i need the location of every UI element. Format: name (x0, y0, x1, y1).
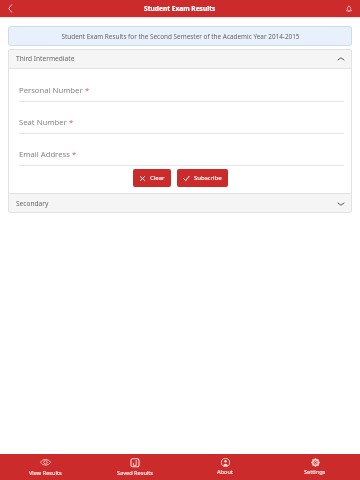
button[interactable]: About (180, 454, 270, 480)
button[interactable]: Subscribe (177, 169, 228, 187)
button[interactable]: Notifications (338, 0, 360, 17)
staticText: Clear (150, 174, 165, 182)
staticText: Secondary (16, 199, 49, 208)
staticText: Personal Number (19, 85, 83, 95)
staticText: Email Address (19, 149, 70, 159)
button[interactable]: Secondary (8, 194, 352, 213)
staticText: Saved Results (117, 469, 154, 477)
staticText: Subscribe (194, 174, 222, 182)
staticText: * (83, 85, 90, 95)
staticText: Student Exam Results for the Second Seme… (61, 32, 300, 41)
button[interactable]: View Results (0, 454, 90, 480)
staticText: * (70, 149, 77, 159)
staticText: Settings (304, 468, 326, 476)
button[interactable]: Clear (133, 169, 171, 187)
staticText: View Results (29, 469, 62, 477)
button[interactable]: Back (0, 0, 20, 17)
button[interactable]: Saved Results (90, 454, 180, 480)
staticText: * (67, 117, 74, 127)
button[interactable]: Settings (270, 454, 360, 480)
staticText: About (217, 468, 233, 476)
staticText: Third Intermediate (16, 54, 75, 63)
staticText: Student Exam Results (144, 4, 216, 13)
staticText: Seat Number (19, 117, 67, 127)
button[interactable]: Third Intermediate (8, 49, 352, 68)
